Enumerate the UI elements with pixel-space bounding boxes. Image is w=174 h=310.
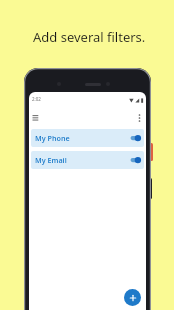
button[interactable] xyxy=(133,109,146,124)
staticText: Add several filters. xyxy=(33,28,146,46)
staticText: My Phone xyxy=(35,133,70,143)
staticText: My Email xyxy=(35,155,67,165)
button[interactable] xyxy=(130,134,141,142)
button[interactable] xyxy=(130,156,141,164)
staticText: 2:02 xyxy=(32,96,41,102)
button[interactable] xyxy=(29,109,43,123)
button[interactable] xyxy=(124,289,141,306)
button[interactable]: My Phone xyxy=(31,129,144,147)
button[interactable]: My Email xyxy=(31,151,144,169)
